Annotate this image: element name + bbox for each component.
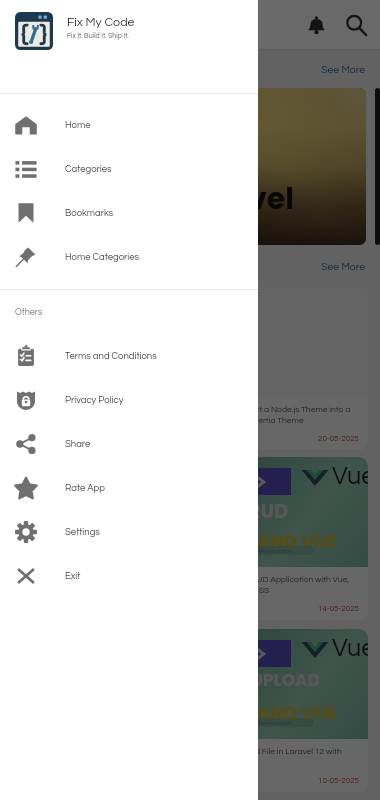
button[interactable]: Search bbox=[336, 5, 376, 45]
staticText: L 12 AND VUE bbox=[224, 700, 337, 725]
staticText: Fix It. Build It. Ship It. bbox=[67, 32, 129, 39]
staticText: CRUD bbox=[234, 498, 289, 525]
button[interactable]: See More bbox=[307, 59, 380, 80]
button[interactable]: Laravel 12 Authentication using bbox=[12, 457, 186, 620]
button[interactable]: How to Convert a Node.js Theme into a bbox=[194, 287, 368, 450]
staticText: Bookmarks bbox=[65, 208, 114, 218]
staticText: Crud Operations bbox=[180, 230, 262, 241]
staticText: See More bbox=[321, 261, 366, 272]
staticText: Fix My Code bbox=[67, 16, 135, 29]
staticText: Laravel bbox=[180, 178, 294, 220]
staticText: 14-05-2025 bbox=[318, 604, 359, 612]
staticText: Vue bbox=[332, 463, 368, 489]
staticText: Laravel 12 + Inertia Theme bbox=[204, 416, 304, 425]
staticText: Home bbox=[65, 120, 91, 130]
staticText: 10-05-2025 bbox=[318, 776, 359, 784]
staticText: Settings bbox=[65, 527, 100, 537]
staticText: www.fixmycode.in bbox=[244, 548, 292, 554]
button[interactable] bbox=[375, 88, 380, 245]
staticText: Share bbox=[65, 439, 91, 449]
button[interactable]: Rate App bbox=[0, 466, 258, 510]
staticText: See More bbox=[321, 64, 366, 75]
button[interactable]: Open navigation menu bbox=[10, 7, 46, 43]
staticText: How to Convert a Node.js Theme into a bbox=[204, 405, 351, 414]
staticText: Home Categories bbox=[65, 252, 140, 262]
button[interactable]: See More bbox=[307, 256, 380, 277]
button[interactable]: Exit bbox=[0, 554, 258, 598]
button[interactable]: Notifications bbox=[296, 5, 336, 45]
button[interactable]: Share bbox=[0, 422, 258, 466]
button[interactable]: Home Categories bbox=[0, 235, 258, 279]
staticText: Rate App bbox=[65, 483, 105, 493]
staticText: Others bbox=[15, 308, 43, 317]
button[interactable]: Terms and Conditions bbox=[0, 334, 258, 378]
staticText: How to Upload File in Laravel 12 with bbox=[204, 747, 342, 756]
staticText: Vue bbox=[332, 635, 368, 661]
button[interactable]: Bookmarks bbox=[0, 191, 258, 235]
button[interactable]: Vue bbox=[194, 457, 368, 620]
button[interactable]: Laravel bbox=[12, 88, 366, 245]
staticText: Terms and Conditions bbox=[65, 351, 157, 361]
staticText: www.fixmycode.in bbox=[244, 720, 292, 726]
staticText: Laravel 12 Authentication using bbox=[22, 575, 141, 584]
staticText: L 12 AND VUE bbox=[224, 528, 337, 553]
button[interactable]: Vue bbox=[194, 629, 368, 792]
staticText: TO UPLOAD bbox=[224, 668, 320, 692]
button[interactable]: Categories bbox=[0, 147, 258, 191]
staticText: Privacy Policy bbox=[65, 395, 124, 405]
staticText: and Tailwind CSS bbox=[204, 586, 270, 595]
button[interactable]: Settings bbox=[0, 510, 258, 554]
staticText: 20-05-2025 bbox=[318, 434, 359, 442]
button[interactable]: Home bbox=[0, 103, 258, 147]
staticText: Laravel 12 CRUD Application with Vue, bbox=[204, 575, 350, 584]
staticText: Categories bbox=[65, 164, 112, 174]
staticText: Exit bbox=[65, 571, 81, 581]
button[interactable]: Privacy Policy bbox=[0, 378, 258, 422]
button[interactable]: How to Build a REST API with bbox=[12, 287, 186, 450]
staticText: How to Build a REST API with bbox=[22, 405, 132, 414]
